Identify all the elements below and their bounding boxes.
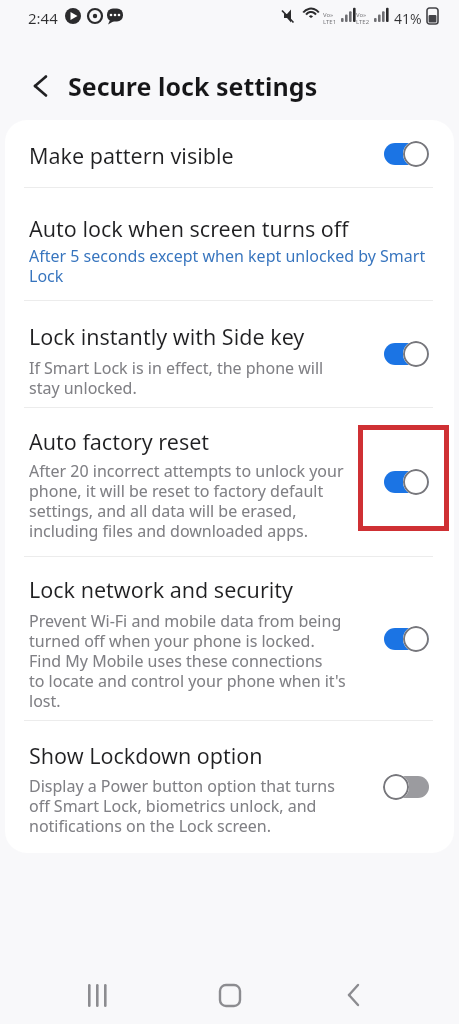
button[interactable] <box>24 70 56 102</box>
button[interactable] <box>383 340 429 368</box>
button[interactable] <box>383 773 429 801</box>
staticText: Auto factory reset <box>29 427 210 456</box>
staticText: 2:44 <box>28 8 58 28</box>
staticText: Lock network and security <box>29 575 294 604</box>
staticText: Prevent Wi-Fi and mobile data from being… <box>29 610 346 711</box>
staticText: After 5 seconds except when kept unlocke… <box>29 245 426 286</box>
staticText: Secure lock settings <box>68 69 318 103</box>
button[interactable]: Auto factory reset <box>5 408 454 556</box>
button[interactable] <box>82 978 116 1012</box>
button[interactable]: Make pattern visible <box>5 120 454 187</box>
staticText: After 20 incorrect attempts to unlock yo… <box>29 460 344 541</box>
staticText: Auto lock when screen turns off <box>29 214 349 243</box>
staticText: 41% <box>394 9 422 28</box>
button[interactable]: Lock instantly with Side key <box>5 301 454 407</box>
staticText: Show Lockdown option <box>29 741 263 770</box>
staticText: Display a Power button option that turns… <box>29 775 335 836</box>
button[interactable] <box>383 625 429 653</box>
button[interactable]: Lock network and security <box>5 557 454 720</box>
button[interactable]: Auto lock when screen turns off <box>5 188 454 300</box>
button[interactable] <box>213 978 247 1012</box>
button[interactable] <box>383 468 429 496</box>
staticText: Make pattern visible <box>29 141 234 170</box>
button[interactable]: Show Lockdown option <box>5 721 454 853</box>
staticText: If Smart Lock is in effect, the phone wi… <box>29 357 324 398</box>
staticText: Vo» LTE1 <box>323 11 337 26</box>
staticText: Lock instantly with Side key <box>29 322 305 351</box>
staticText: Vo» LTE2 <box>356 11 370 26</box>
button[interactable] <box>337 978 371 1012</box>
button[interactable] <box>383 140 429 168</box>
